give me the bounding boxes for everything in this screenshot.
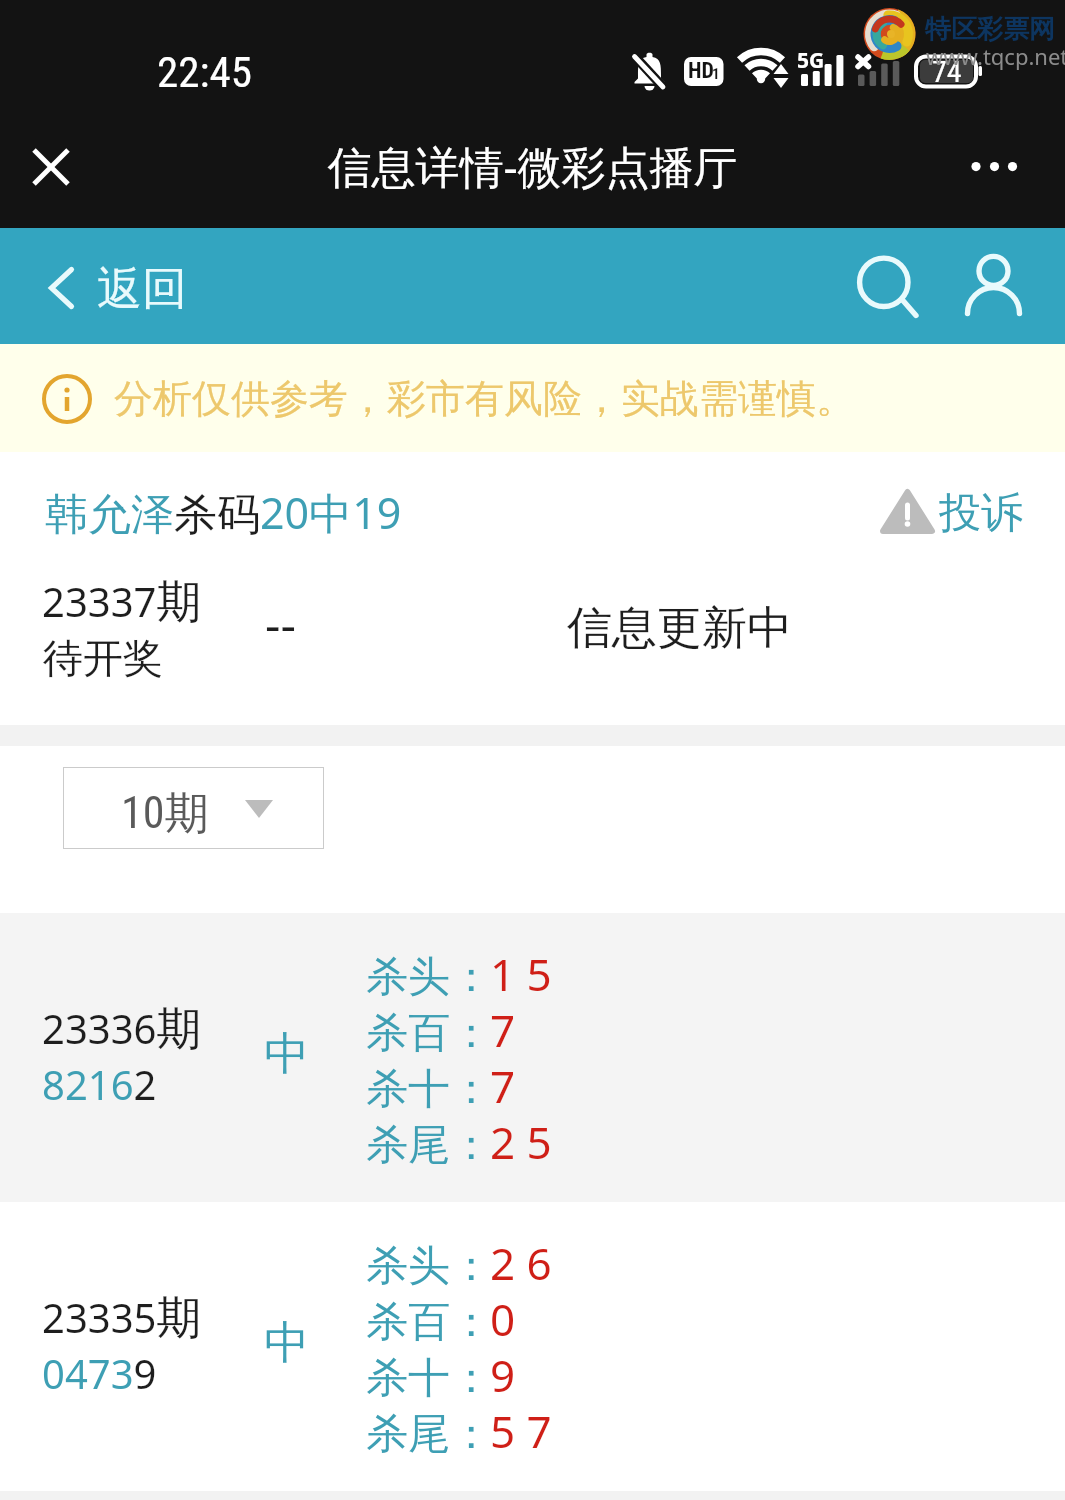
staticText: 2 5 [490,1112,552,1172]
staticText: 杀尾： [366,1408,492,1461]
staticText: 杀头： [366,951,492,1004]
staticText: 7 [490,1056,516,1116]
staticText: 04739 [42,1346,157,1400]
staticText: 5G [797,46,825,75]
staticText: 23337期 [42,574,202,631]
staticText: 待开奖 [43,633,163,683]
button[interactable]: 23335期 [0,1202,1065,1491]
staticText: 82162 [42,1057,157,1111]
staticText: 杀百： [366,1296,492,1349]
staticText: 10期 [121,786,209,841]
button[interactable]: 返回 [30,228,200,344]
staticText: 9 [490,1345,516,1405]
staticText: 23335期 [42,1290,202,1347]
button[interactable]: 10期 [63,767,324,849]
staticText: 杀尾： [366,1119,492,1172]
button[interactable]: Search [847,246,923,326]
staticText: 2 6 [490,1233,552,1293]
staticText: 杀百： [366,1007,492,1060]
staticText: 信息详情-微彩点播厅 [0,136,1065,196]
staticText: 5 7 [490,1401,552,1461]
staticText: 特区彩票网 [925,13,1055,46]
staticText: -- [265,591,296,656]
staticText: 杀十： [366,1352,492,1405]
staticText: 韩允泽杀码20中19 [45,483,402,542]
staticText: 中 [264,1026,309,1083]
staticText: 22:45 [157,47,252,97]
button[interactable]: 投诉 [872,478,1028,542]
staticText: 分析仅供参考，彩市有风险，实战需谨慎。 [114,374,855,423]
button[interactable]: More options [958,134,1030,200]
staticText: 23336期 [42,1001,202,1058]
staticText: 0 [490,1289,516,1349]
staticText: 1 [712,65,720,83]
staticText: 杀头： [366,1240,492,1293]
staticText: 杀十： [366,1063,492,1116]
staticText: 74 [932,54,962,89]
staticText: 1 5 [490,944,552,1004]
staticText: HD [688,58,714,84]
staticText: 信息更新中 [567,600,792,657]
staticText: 返回 [97,261,187,318]
button[interactable]: 23336期 [0,913,1065,1202]
staticText: 中 [264,1315,309,1372]
staticText: www.tqcp.net [926,41,1065,71]
staticText: 投诉 [939,487,1023,540]
button[interactable]: Close [17,133,85,201]
staticText: 7 [490,1000,516,1060]
button[interactable]: Account [957,242,1033,328]
